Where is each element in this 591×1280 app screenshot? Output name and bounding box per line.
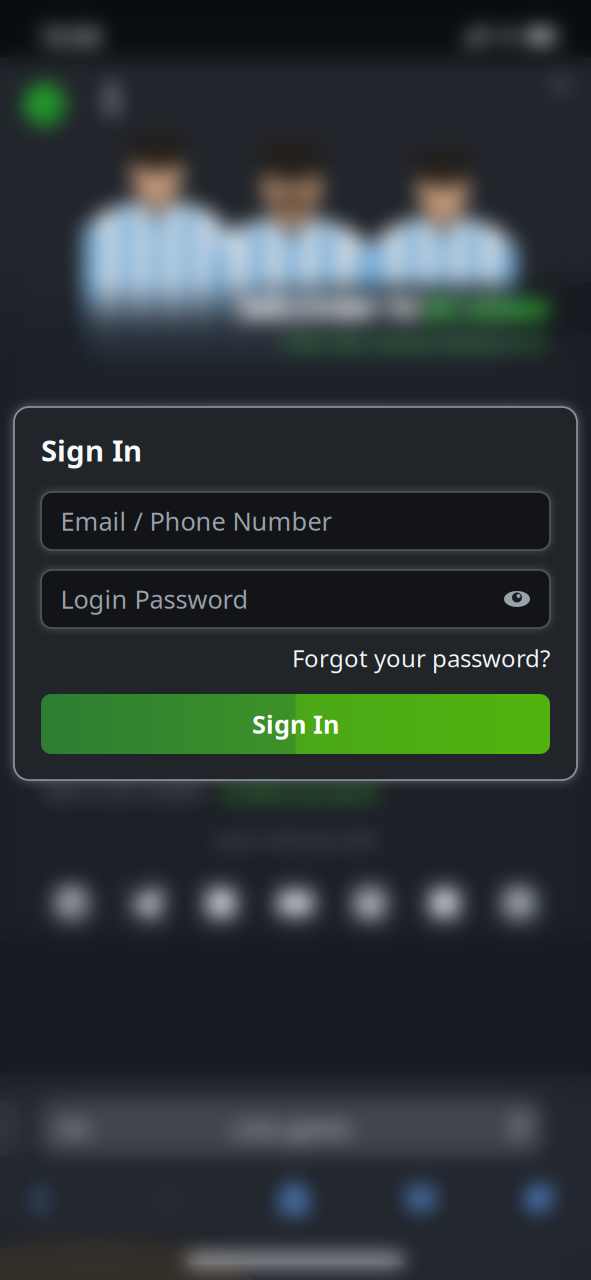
staticText: Forgot your password? bbox=[292, 642, 550, 674]
staticText: BC.GAME bbox=[426, 290, 549, 328]
button[interactable]: Forgot your password? bbox=[292, 642, 550, 674]
button[interactable]: Login Password bbox=[41, 570, 550, 628]
button[interactable]: Email / Phone Number bbox=[41, 492, 550, 550]
button[interactable] bbox=[195, 877, 247, 929]
button[interactable] bbox=[95, 79, 129, 119]
staticText: WELCOME TO bbox=[242, 290, 420, 328]
button[interactable] bbox=[19, 1178, 63, 1222]
button[interactable]: Sign In bbox=[41, 694, 550, 754]
button[interactable] bbox=[120, 877, 172, 929]
button[interactable] bbox=[418, 877, 470, 929]
button[interactable] bbox=[272, 1176, 316, 1220]
button[interactable] bbox=[542, 67, 578, 103]
button[interactable] bbox=[344, 877, 396, 929]
staticText: 10:00 bbox=[38, 19, 101, 53]
staticText: AA bbox=[57, 1112, 89, 1144]
button[interactable] bbox=[46, 877, 98, 929]
button[interactable] bbox=[269, 877, 321, 929]
button[interactable] bbox=[399, 1176, 443, 1220]
button[interactable] bbox=[520, 1176, 564, 1220]
button[interactable]: $ bbox=[493, 877, 545, 929]
button[interactable]: Create account bbox=[221, 776, 379, 804]
staticText: Sign In bbox=[252, 707, 339, 741]
staticText: a-bc.game bbox=[232, 1112, 350, 1144]
button[interactable] bbox=[23, 81, 67, 127]
button[interactable]: AA bbox=[38, 1098, 544, 1155]
staticText: 100% FIRST DEPOSIT BONUS HERE bbox=[281, 332, 547, 354]
staticText: Sign In bbox=[41, 430, 142, 469]
staticText: Email / Phone Number bbox=[60, 504, 331, 538]
staticText: Create account bbox=[221, 776, 379, 804]
staticText: $ bbox=[512, 887, 526, 919]
staticText: Login Password bbox=[60, 582, 248, 616]
staticText: New to BC.GAME? bbox=[41, 777, 208, 803]
